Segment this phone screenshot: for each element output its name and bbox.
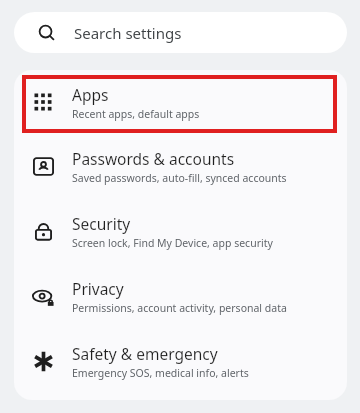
staticText: Screen lock, Find My Device, app securit… — [72, 236, 273, 250]
other: Apps — [33, 92, 53, 112]
staticText: Safety & emergency — [72, 343, 218, 364]
other: Safety and emergency — [33, 351, 54, 372]
staticText: Passwords & accounts — [72, 148, 235, 169]
button[interactable]: Security — [14, 199, 347, 264]
staticText: Recent apps, default apps — [72, 107, 200, 121]
staticText: Permissions, account activity, personal … — [72, 301, 287, 315]
other: Passwords and accounts — [33, 156, 54, 177]
staticText: Search settings — [74, 23, 182, 43]
staticText: Emergency SOS, medical info, alerts — [72, 366, 249, 380]
staticText: Saved passwords, auto-fill, synced accou… — [72, 171, 287, 185]
staticText: Apps — [72, 84, 109, 105]
button[interactable]: Safety and emergency — [14, 329, 347, 394]
other: Security — [33, 221, 54, 242]
button[interactable]: Search settings — [14, 12, 347, 53]
staticText: Security — [72, 213, 131, 234]
button[interactable]: Privacy — [14, 264, 347, 329]
other: Privacy — [32, 286, 54, 308]
staticText: Privacy — [72, 278, 124, 299]
button[interactable]: Apps — [14, 70, 347, 134]
button[interactable]: Passwords and accounts — [14, 134, 347, 199]
